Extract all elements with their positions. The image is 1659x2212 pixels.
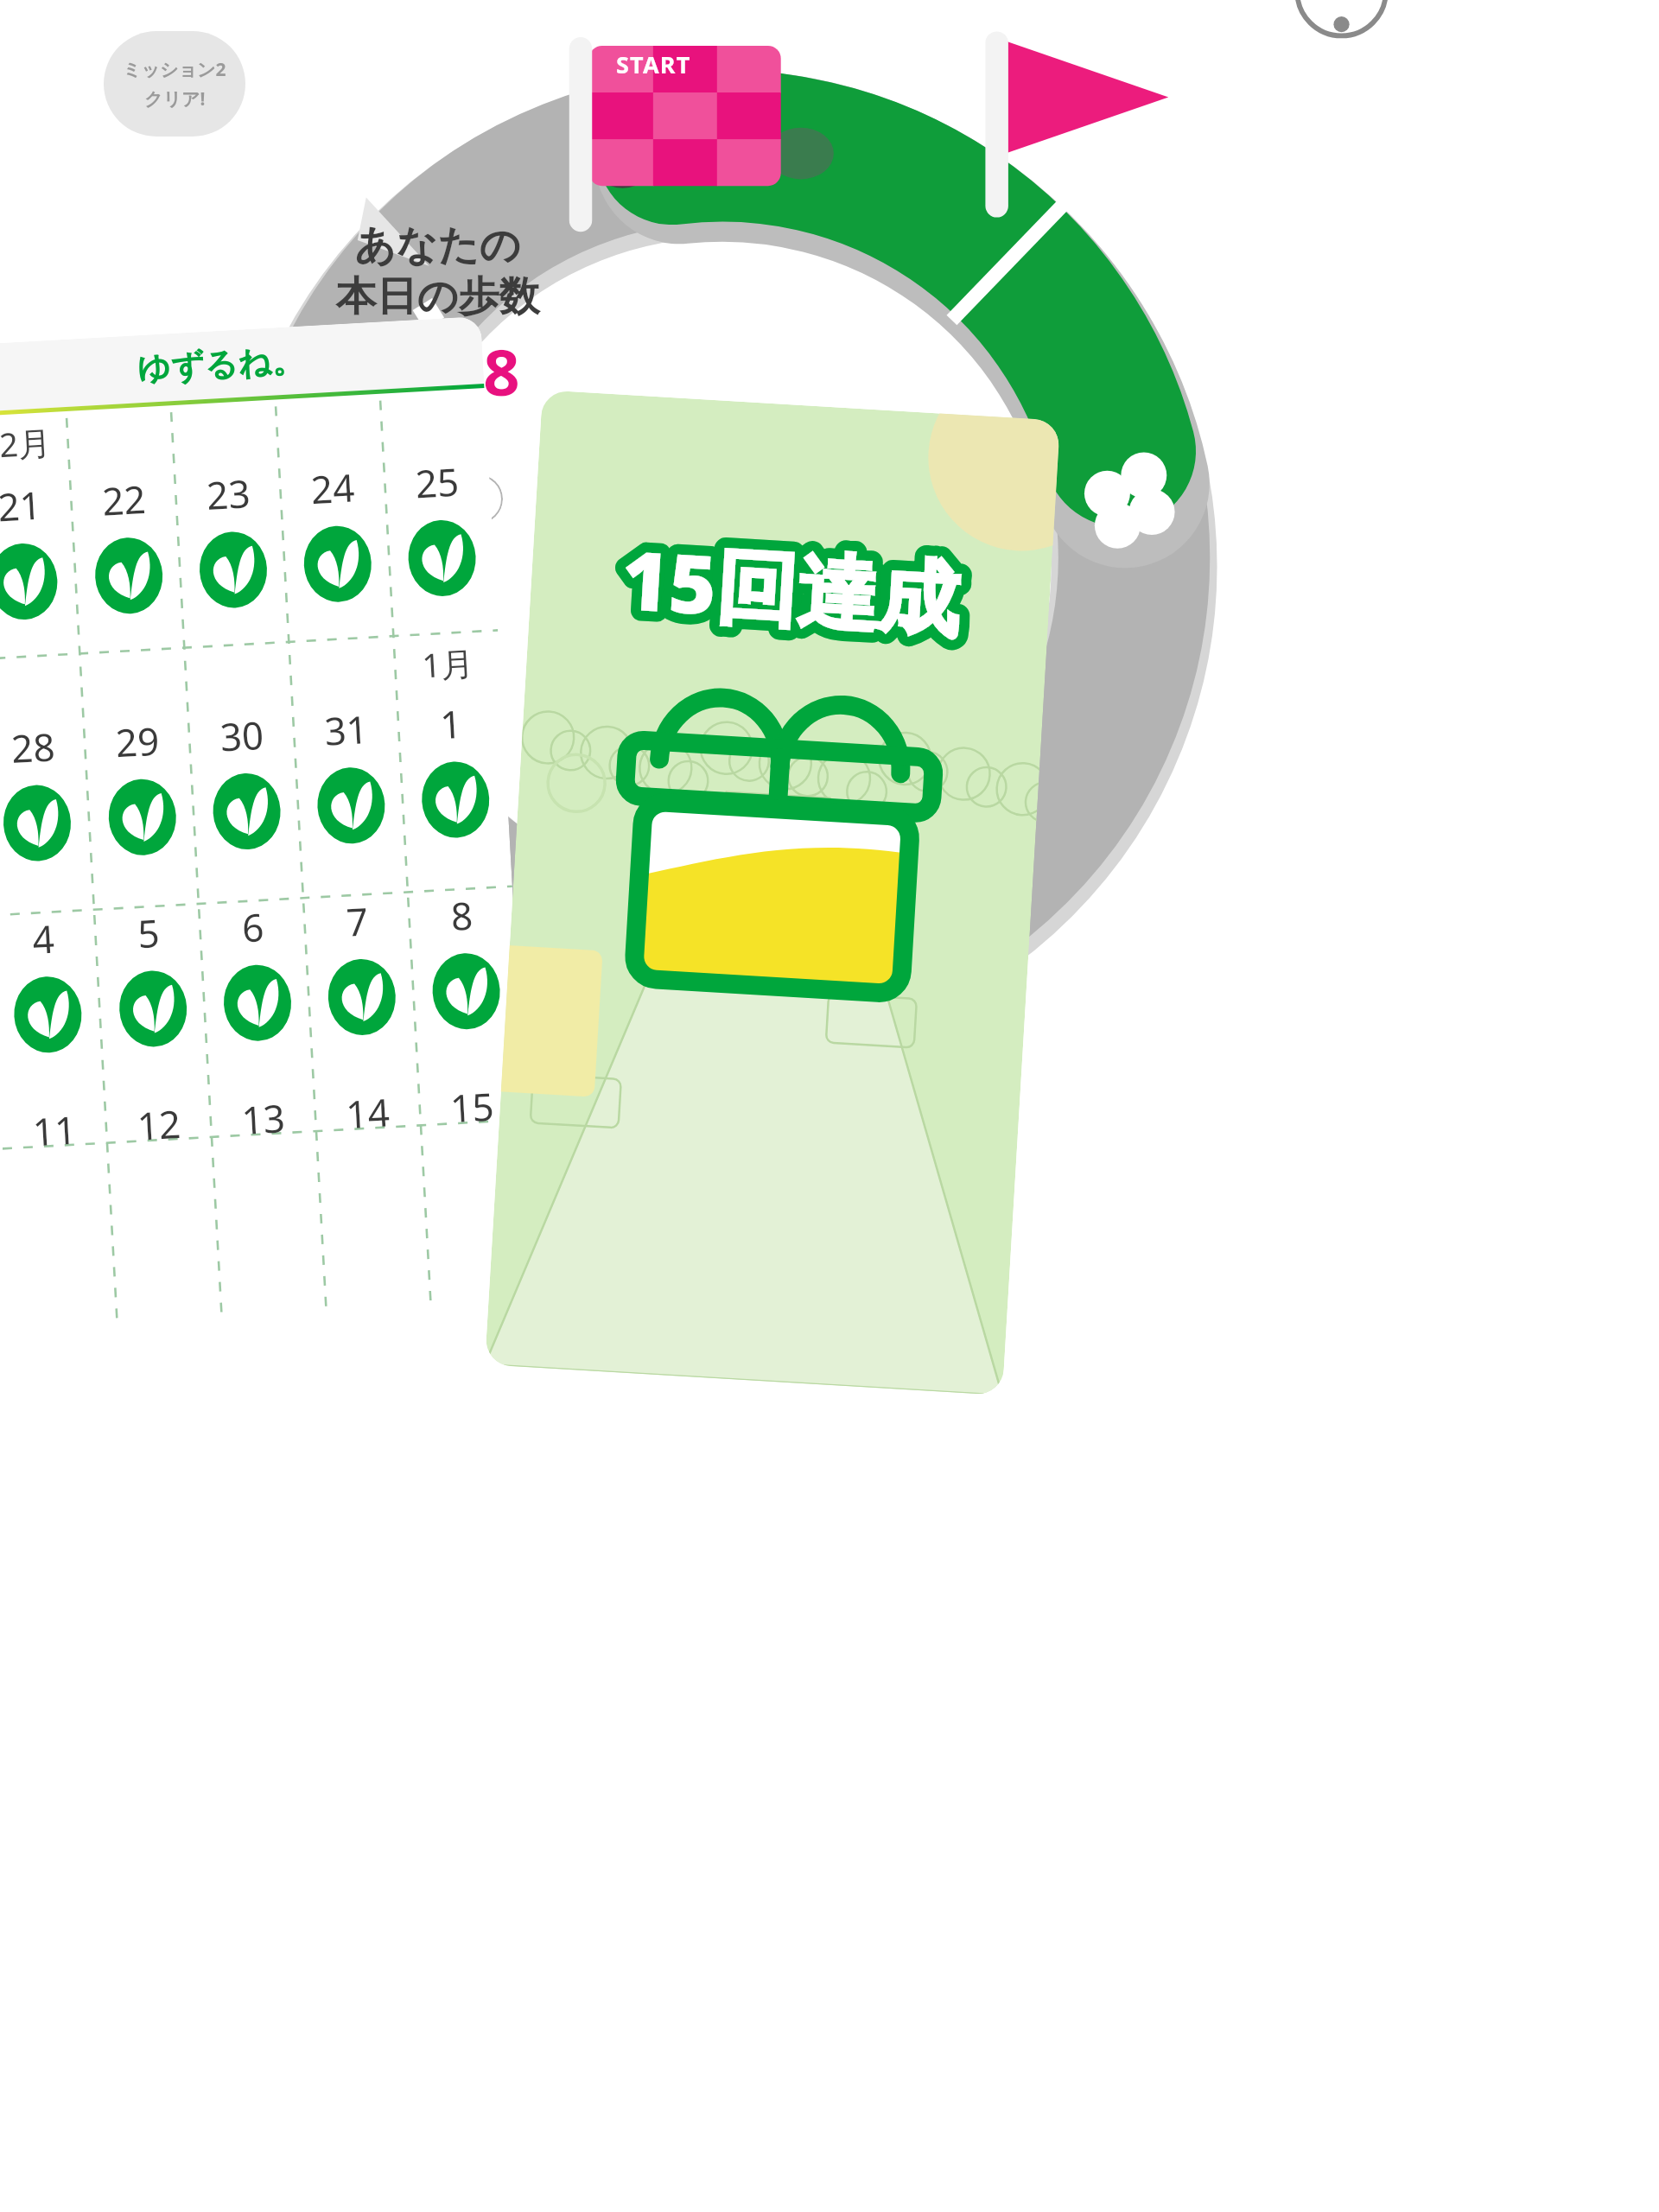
button[interactable]: 11 [0,1095,113,1247]
staticText: 8 [449,889,475,942]
staticText: クリア! [144,86,206,111]
staticText: 1 [439,697,464,750]
staticText: 1月 [421,639,475,687]
button[interactable]: 15回達成 [485,390,1060,1395]
staticText: 24 [310,461,356,515]
button[interactable]: 30 [188,700,303,897]
staticText: 28 [10,720,57,774]
staticText: 1,728 [355,327,520,415]
staticText: 4 [31,912,56,965]
button[interactable]: 1 [397,688,512,885]
button[interactable]: 15 [418,1071,531,1224]
staticText: 13 [240,1091,287,1146]
staticText: 25 [414,455,461,509]
button[interactable]: 6 [199,891,314,1089]
staticText: 更新 [425,480,484,518]
staticText: START [616,48,691,80]
staticText: 12 [136,1097,183,1152]
staticText: 21 [0,478,43,533]
staticText: 本日の歩数 [335,271,540,322]
staticText: 7 [345,895,370,948]
button[interactable]: 更新 [372,474,503,524]
button[interactable]: 24 [279,452,394,650]
button[interactable]: 5 [94,897,209,1095]
button[interactable]: 28 [0,711,94,909]
staticText: 11 [31,1103,78,1157]
staticText: ミッション2 [123,57,226,82]
staticText: 29 [114,714,161,768]
button[interactable]: 25 [383,447,498,644]
staticText: 31 [323,702,370,757]
staticText: 12月 [0,419,53,468]
staticText: 15回達成 [618,523,964,653]
button[interactable]: 29 [84,706,199,903]
button[interactable]: ミッション2 [104,31,245,137]
staticText: 14 [344,1086,391,1140]
button[interactable]: 14 [314,1077,427,1229]
staticText: 15回達成 [618,523,964,653]
staticText: 15 [449,1080,496,1134]
button[interactable]: 7 [303,885,418,1083]
staticText: 5 [136,906,161,959]
staticText: ゆずるね。 [136,339,306,390]
button[interactable]: 31 [292,694,408,891]
button[interactable]: 21 [0,470,81,667]
button[interactable]: 13 [209,1083,322,1235]
button[interactable]: 8 [408,880,523,1077]
button[interactable]: 23 [175,458,290,656]
staticText: 23 [205,467,252,521]
staticText: 30 [219,708,266,763]
button[interactable]: 22 [70,464,185,661]
button[interactable]: 4 [0,903,105,1100]
staticText: 22 [101,473,148,527]
staticText: 6 [241,900,266,953]
button[interactable]: 12 [105,1089,218,1241]
staticText: あなたの [354,220,521,271]
